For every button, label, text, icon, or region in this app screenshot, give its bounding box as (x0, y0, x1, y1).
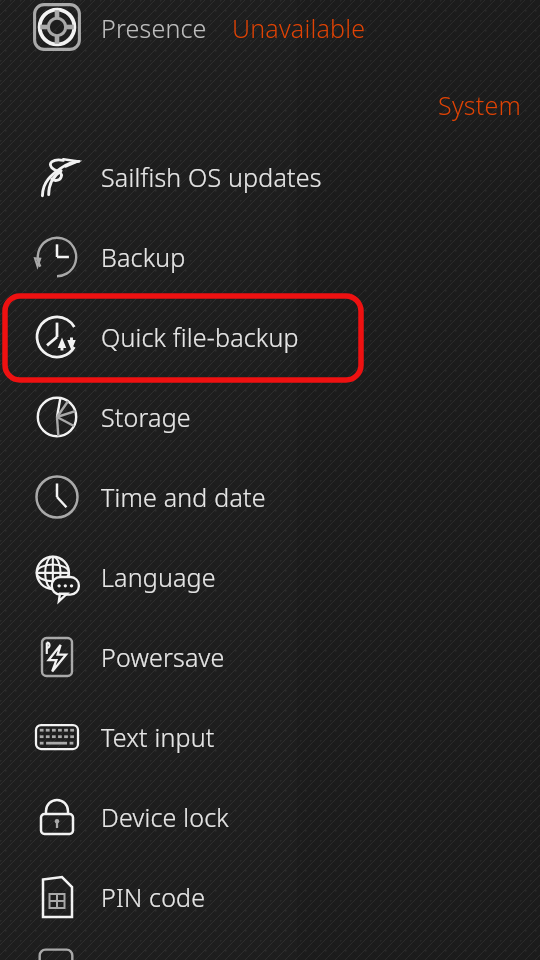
staticText: Device lock (101, 800, 229, 834)
staticText: System (438, 88, 521, 122)
button[interactable]: PIN code (0, 857, 540, 937)
staticText: Powersave (101, 640, 225, 674)
button[interactable]: Time and date (0, 457, 540, 537)
staticText: Text input (101, 720, 215, 754)
button[interactable]: Storage (0, 377, 540, 457)
button[interactable]: Device lock (0, 777, 540, 857)
staticText: Presence (101, 11, 214, 45)
staticText: Time and date (101, 480, 266, 514)
button[interactable]: Language (0, 537, 540, 617)
staticText: PIN code (101, 880, 206, 914)
staticText: Storage (101, 400, 191, 434)
button[interactable]: Backup (0, 217, 540, 297)
staticText: Sailfish OS updates (101, 160, 322, 194)
staticText: Quick file-backup (101, 320, 299, 354)
button[interactable]: Quick file-backup (0, 297, 540, 377)
button[interactable]: Powersave (0, 617, 540, 697)
button[interactable]: Presence (0, 0, 540, 56)
button[interactable]: Sailfish OS updates (0, 137, 540, 217)
button[interactable]: Text input (0, 697, 540, 777)
staticText: Language (101, 560, 216, 594)
staticText: Unavailable (232, 11, 366, 45)
button[interactable]: More settings (32, 941, 80, 960)
staticText: Backup (101, 240, 186, 274)
